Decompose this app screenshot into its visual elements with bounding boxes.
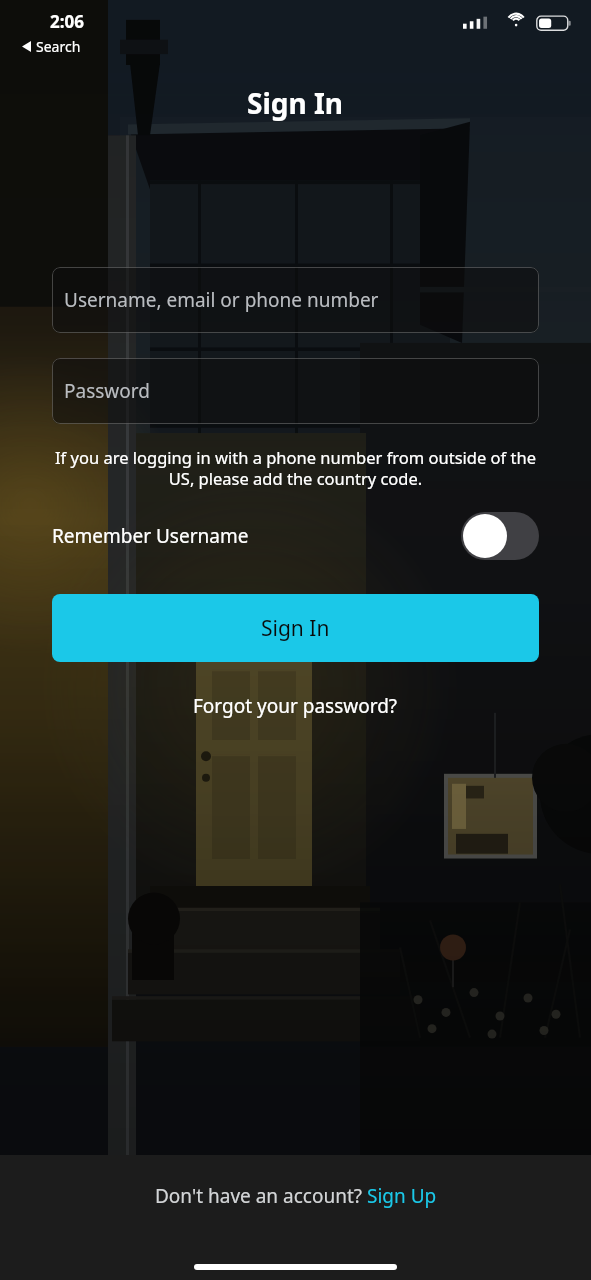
button[interactable]: Sign In	[52, 594, 539, 662]
staticText: Don't have an account? Sign Up	[155, 1183, 437, 1209]
button[interactable]: Username, email or phone number	[52, 267, 539, 333]
staticText: Password	[64, 378, 150, 404]
staticText: 2:06	[50, 10, 84, 33]
staticText: Search	[36, 37, 81, 56]
button[interactable]: Password	[52, 358, 539, 424]
staticText: Forgot your password?	[193, 693, 398, 719]
button[interactable]: Don't have an account? Sign Up	[0, 1155, 591, 1237]
staticText: Username, email or phone number	[64, 287, 379, 313]
button[interactable]: Remember Username toggle, off	[461, 512, 539, 560]
staticText: If you are logging in with a phone numbe…	[52, 446, 539, 490]
button[interactable]: Forgot your password?	[183, 687, 408, 725]
staticText: Sign In	[247, 84, 344, 122]
staticText: Sign In	[261, 614, 330, 643]
staticText: Remember Username	[52, 523, 249, 549]
button[interactable]: Remember Username	[52, 510, 539, 562]
